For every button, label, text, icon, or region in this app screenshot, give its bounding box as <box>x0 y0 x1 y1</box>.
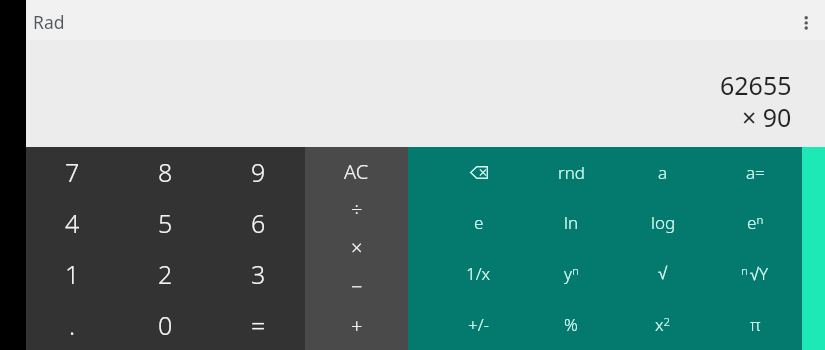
staticText: en <box>747 211 764 234</box>
staticText: ÷ <box>351 196 363 223</box>
staticText: 8 <box>158 155 173 189</box>
staticText: = <box>251 308 266 342</box>
staticText: × <box>351 234 363 261</box>
staticText: % <box>564 313 578 336</box>
button[interactable]: 2 <box>119 248 212 299</box>
button[interactable]: More options <box>785 0 825 40</box>
staticText: √ <box>658 264 668 283</box>
button[interactable]: 1/x <box>432 248 525 299</box>
button[interactable]: ln <box>525 197 617 248</box>
staticText: 62655 <box>720 68 792 102</box>
button[interactable]: 4 <box>26 197 119 248</box>
staticText: a <box>658 161 668 184</box>
staticText: a= <box>746 161 765 184</box>
staticText: π <box>750 313 761 336</box>
button[interactable]: 1 <box>26 248 119 299</box>
staticText: 1/x <box>466 262 491 285</box>
staticText: 1 <box>65 257 80 291</box>
staticText: ln <box>564 211 579 234</box>
button[interactable]: 8 <box>119 147 212 197</box>
staticText: 3 <box>251 257 266 291</box>
button[interactable]: % <box>525 299 617 350</box>
staticText: rnd <box>558 161 585 184</box>
button[interactable]: yn <box>525 248 617 299</box>
button[interactable]: n √Y <box>709 248 801 299</box>
button[interactable]: π <box>709 299 801 350</box>
button[interactable]: a= <box>709 147 801 197</box>
button[interactable]: × <box>305 228 408 267</box>
staticText: 4 <box>65 206 80 240</box>
staticText: 2 <box>158 257 173 291</box>
button[interactable]: = <box>212 299 305 350</box>
button[interactable]: AC <box>305 152 408 190</box>
staticText: − <box>351 273 363 300</box>
staticText: AC <box>344 158 369 185</box>
button[interactable]: . <box>26 299 119 350</box>
button[interactable]: 5 <box>119 197 212 248</box>
button[interactable]: a <box>617 147 709 197</box>
staticText: log <box>651 211 676 234</box>
button[interactable]: Delete <box>432 147 525 197</box>
staticText: 0 <box>158 308 173 342</box>
button[interactable]: − <box>305 267 408 306</box>
button[interactable]: x2 <box>617 299 709 350</box>
button[interactable]: en <box>709 197 801 248</box>
staticText: +/- <box>468 313 490 336</box>
staticText: 7 <box>65 155 80 189</box>
staticText: e <box>474 211 484 234</box>
button[interactable]: 3 <box>212 248 305 299</box>
button[interactable]: 0 <box>119 299 212 350</box>
button[interactable]: 9 <box>212 147 305 197</box>
staticText: 9 <box>251 155 266 189</box>
staticText: yn <box>564 262 579 285</box>
staticText: × 90 <box>742 100 792 134</box>
button[interactable]: +/- <box>432 299 525 350</box>
button[interactable]: Rad <box>26 0 74 40</box>
staticText: Rad <box>33 10 65 34</box>
button[interactable]: 7 <box>26 147 119 197</box>
staticText: 5 <box>158 206 173 240</box>
button[interactable]: log <box>617 197 709 248</box>
button[interactable]: + <box>305 306 408 345</box>
staticText: . <box>69 308 76 342</box>
button[interactable]: rnd <box>525 147 617 197</box>
button[interactable]: √ <box>617 248 709 299</box>
button[interactable]: 6 <box>212 197 305 248</box>
button[interactable]: ÷ <box>305 190 408 228</box>
button[interactable]: e <box>432 197 525 248</box>
staticText: x2 <box>655 313 671 336</box>
staticText: 6 <box>251 206 266 240</box>
staticText: n √Y <box>741 262 769 285</box>
staticText: + <box>351 312 363 339</box>
